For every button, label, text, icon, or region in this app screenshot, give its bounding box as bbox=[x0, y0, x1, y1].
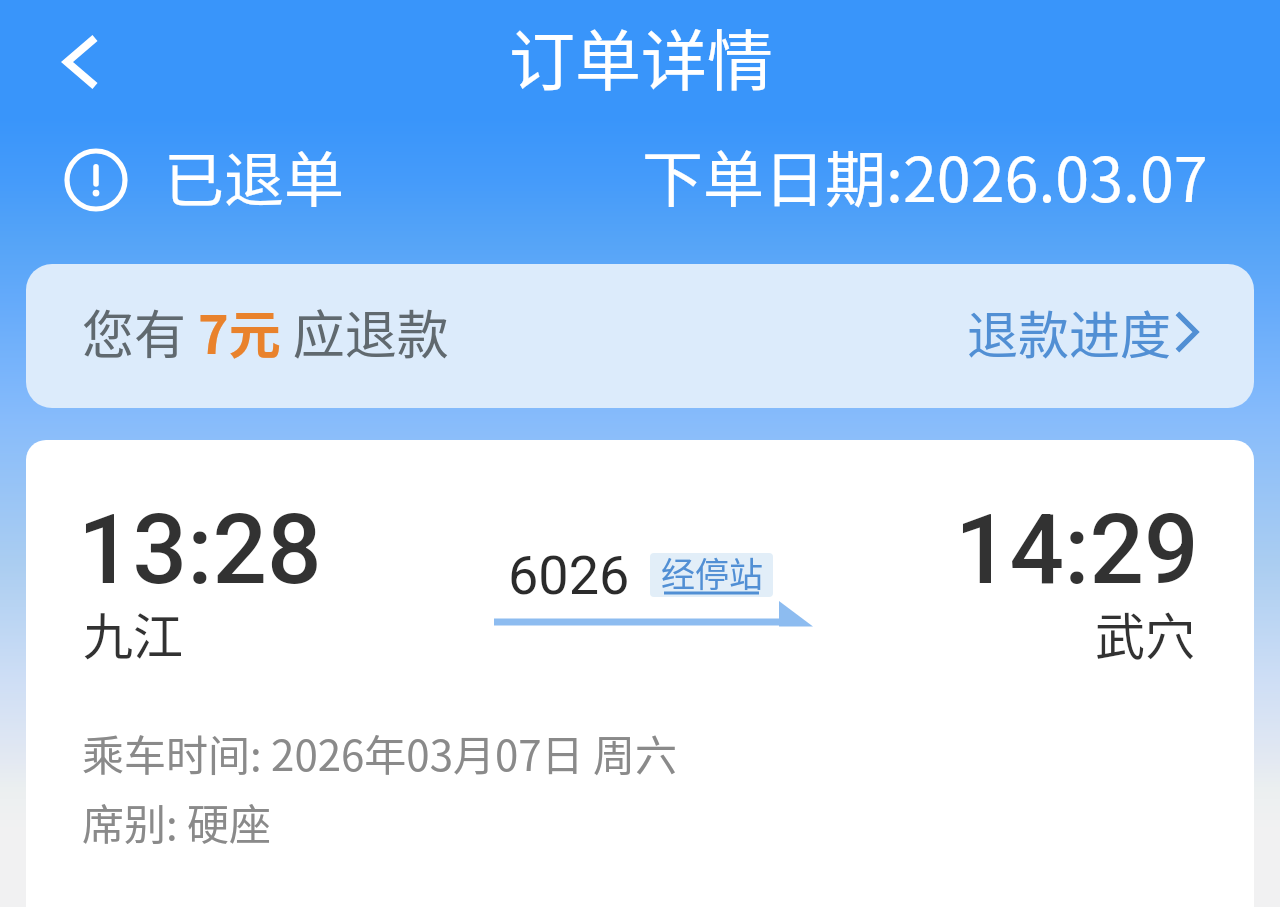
staticText: 您有 bbox=[82, 294, 198, 369]
staticText: 退款进度 bbox=[967, 295, 1172, 369]
staticText: 已退单 bbox=[164, 132, 344, 219]
button[interactable]: 经停站 bbox=[650, 553, 773, 597]
staticText: 13:28 bbox=[78, 494, 322, 607]
button[interactable]: 13:28 bbox=[26, 440, 1254, 907]
button[interactable]: 您有 bbox=[26, 264, 1254, 408]
button[interactable]: Back bbox=[39, 22, 117, 100]
staticText: 武穴 bbox=[1095, 597, 1195, 669]
staticText: 经停站 bbox=[661, 553, 763, 592]
staticText: 席别: 硬座 bbox=[82, 791, 272, 852]
staticText: 下单日期:2026.03.07 bbox=[642, 131, 1208, 219]
staticText: 九江 bbox=[83, 597, 183, 669]
button[interactable]: 退款进度 bbox=[967, 295, 1202, 369]
staticText: 乘车时间: 2026年03月07日 周六 bbox=[82, 722, 677, 783]
staticText: 6026 bbox=[508, 544, 630, 607]
staticText: 14:29 bbox=[955, 494, 1199, 607]
staticText: 7元 bbox=[198, 294, 281, 369]
staticText: 应退款 bbox=[281, 294, 449, 369]
staticText: 订单详情 bbox=[509, 8, 773, 104]
